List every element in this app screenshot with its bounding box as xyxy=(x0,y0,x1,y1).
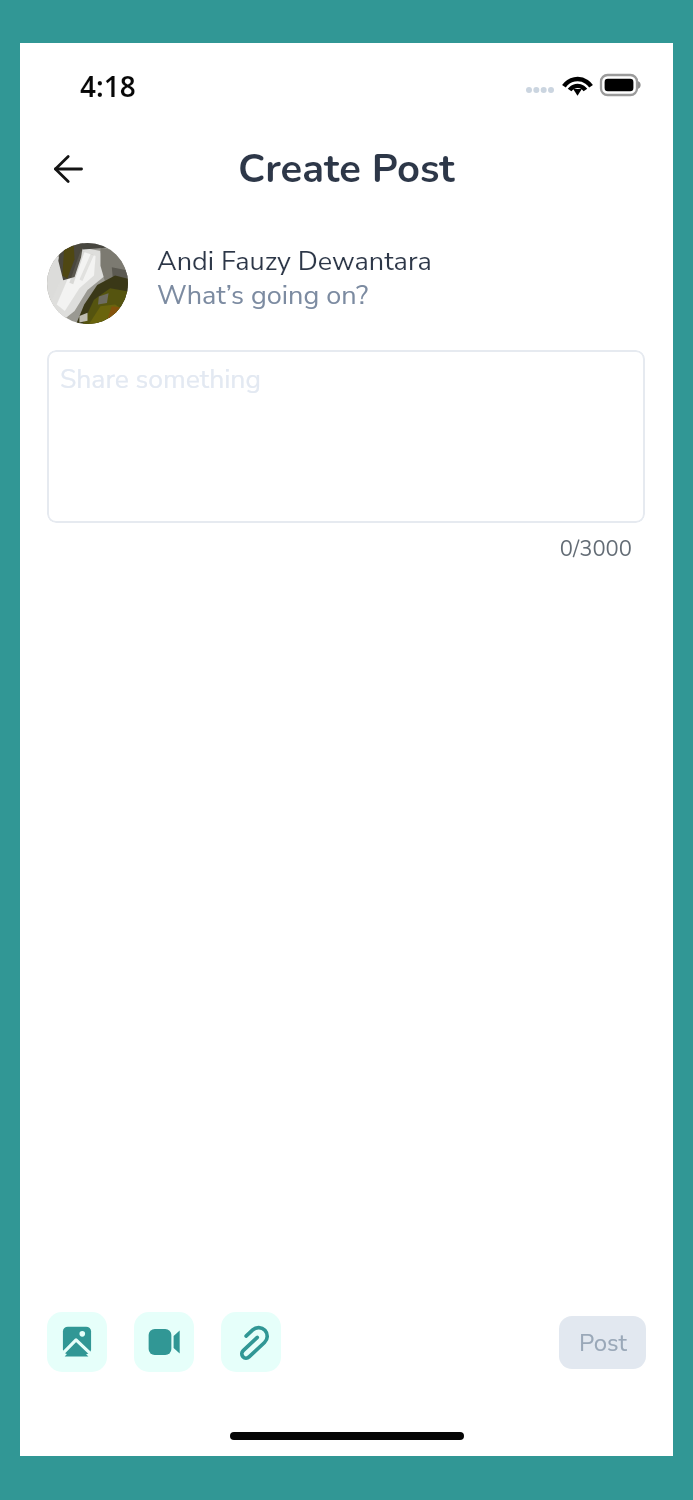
staticText: Share something xyxy=(60,361,261,397)
staticText: What’s going on? xyxy=(157,277,369,314)
button[interactable]: Attach file xyxy=(221,1312,281,1372)
staticText: Post xyxy=(579,1327,627,1360)
button[interactable]: Add video xyxy=(134,1312,194,1372)
staticText: 0/3000 xyxy=(47,534,632,564)
staticText: 4:18 xyxy=(80,67,136,105)
button[interactable]: Share something xyxy=(47,350,645,523)
button[interactable]: Post xyxy=(559,1316,646,1369)
button[interactable]: Back xyxy=(37,138,99,200)
staticText: Create Post xyxy=(238,142,455,197)
staticText: Andi Fauzy Dewantara xyxy=(157,243,432,280)
button[interactable]: Add photo xyxy=(47,1312,107,1372)
